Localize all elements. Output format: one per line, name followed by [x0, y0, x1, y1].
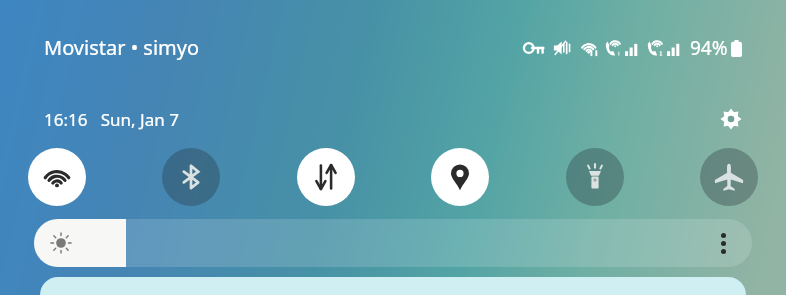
button[interactable]: Flashlight	[566, 148, 624, 206]
button[interactable]: Bluetooth	[162, 148, 220, 206]
button[interactable]: Location	[431, 148, 489, 206]
button[interactable]: Mobile data	[297, 148, 355, 206]
button[interactable]: Airplane mode	[700, 148, 758, 206]
staticText: 16:16 Sun, Jan 7	[44, 108, 179, 131]
button[interactable]: More options	[706, 226, 740, 260]
button[interactable]: More options	[34, 219, 752, 267]
staticText: 94%	[690, 35, 728, 61]
button[interactable]: Wi-Fi	[28, 148, 86, 206]
button[interactable]: Settings	[714, 102, 748, 136]
staticText: Movistar • simyo	[44, 34, 200, 61]
